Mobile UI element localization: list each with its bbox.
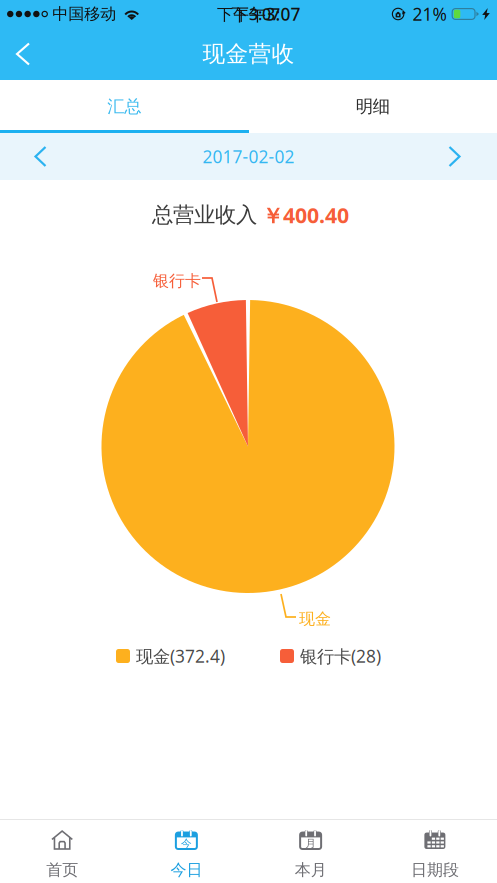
staticText: 中国移动 — [52, 4, 116, 24]
button[interactable]: 日期段 — [373, 819, 497, 883]
button[interactable]: 汇总 — [0, 80, 248, 133]
staticText: 总营业收入 — [152, 202, 257, 228]
staticText: 银行卡(28) — [300, 644, 381, 667]
staticText: 汇总 — [107, 96, 141, 117]
staticText: 现金 — [299, 609, 331, 629]
staticText: 下午3:07 — [217, 3, 280, 25]
staticText: 2017-02-02 — [202, 145, 294, 168]
staticText: 日期段 — [411, 860, 459, 880]
button[interactable]: Back — [0, 28, 46, 80]
staticText: 21% — [413, 2, 447, 25]
staticText: 现金营收 — [202, 40, 294, 68]
staticText: ￥400.40 — [262, 201, 349, 229]
staticText: 本月 — [295, 860, 327, 880]
button[interactable]: 明细 — [248, 80, 497, 133]
staticText: 现金(372.4) — [136, 644, 225, 667]
staticText: 今日 — [170, 860, 202, 880]
button[interactable]: Next day — [412, 133, 497, 180]
staticText: 首页 — [46, 860, 78, 880]
staticText: 今 — [181, 837, 192, 850]
staticText: 月 — [305, 837, 316, 850]
staticText: 明细 — [356, 96, 390, 117]
staticText: 银行卡 — [153, 271, 201, 291]
button[interactable]: 今 — [124, 819, 248, 883]
button[interactable]: 月 — [248, 819, 373, 883]
button[interactable]: Previous day — [0, 133, 81, 180]
button[interactable]: 首页 — [0, 819, 124, 883]
staticText: 下午3:07 — [231, 2, 300, 25]
